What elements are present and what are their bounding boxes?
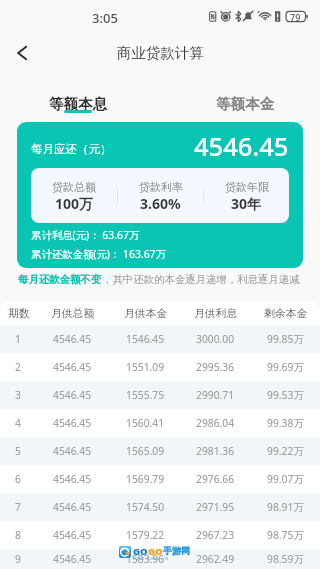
staticText: 5 [15,444,21,458]
staticText: GO [133,545,148,558]
staticText: 99.07万 [267,472,304,486]
staticText: 99.85万 [267,332,304,346]
staticText: 贷款年限 [225,180,269,194]
staticText: 1565.09 [126,444,165,458]
staticText: 3:05 [92,9,118,27]
staticText: 期数 [8,307,30,321]
staticText: 4 [15,416,21,430]
staticText: 月供本金 [124,307,168,321]
staticText: 99.38万 [267,416,304,430]
staticText: 1546.45 [126,332,165,346]
staticText: W W W . G O G O . C N [133,556,169,561]
staticText: 99.22万 [267,444,304,458]
staticText: 100万 [55,194,94,213]
staticText: 99.53万 [267,388,304,402]
staticText: 每月应还（元） [31,142,112,156]
staticText: 2986.04 [196,416,235,430]
staticText: ，其中还款的本金逐月递增，利息逐月递减 [102,273,300,286]
staticText: 3000.00 [196,332,235,346]
staticText: GO [148,545,163,558]
staticText: 2990.71 [196,388,235,402]
staticText: 4546.45 [53,472,92,486]
staticText: 3 [15,388,21,402]
staticText: 1 [15,332,21,346]
staticText: 98.91万 [267,500,304,514]
button[interactable]: Back [6,37,38,69]
staticText: 1569.79 [126,472,165,486]
staticText: 剩余本金 [264,307,308,321]
staticText: 4546.45 [194,129,289,164]
staticText: 每月还款金额不变 [18,273,102,286]
staticText: 2995.36 [196,360,235,374]
staticText: 累计利息(元)： 63.67万 [31,228,140,242]
staticText: 商业贷款计算 [117,44,204,62]
staticText: 1560.41 [126,416,165,430]
button[interactable]: 等额本金 [195,75,295,122]
staticText: 1583.96 [126,552,165,566]
staticText: 2967.23 [196,528,235,542]
button[interactable]: 等额本息 [28,75,128,122]
staticText: 98.75万 [267,528,304,542]
staticText: 98.59万 [267,552,304,566]
staticText: 6 [15,472,21,486]
staticText: 4546.45 [53,528,92,542]
staticText: 2971.95 [196,500,235,514]
staticText: 累计还款金额(元)： 163.67万 [31,247,166,261]
staticText: 2 [15,360,21,374]
staticText: 30年 [231,194,262,213]
staticText: 月供总额 [51,307,95,321]
staticText: 4546.45 [53,360,92,374]
staticText: 月供利息 [194,307,238,321]
staticText: 4546.45 [53,552,92,566]
staticText: 79 [290,11,301,23]
staticText: 4546.45 [53,416,92,430]
staticText: 等额本息 [49,95,107,113]
staticText: 4546.45 [53,388,92,402]
staticText: 9 [15,552,21,566]
staticText: 1551.09 [126,360,165,374]
staticText: 贷款利率 [139,180,183,194]
staticText: 2981.36 [196,444,235,458]
staticText: 2976.66 [196,472,235,486]
staticText: 7 [15,500,21,514]
staticText: 4546.45 [53,444,92,458]
staticText: 2962.49 [196,552,235,566]
staticText: 4546.45 [53,500,92,514]
staticText: 3.60% [140,194,181,213]
staticText: 8 [15,528,21,542]
staticText: 1555.75 [126,388,165,402]
staticText: 等额本金 [216,95,274,113]
staticText: 手游网 [163,545,190,556]
staticText: 99.69万 [267,360,304,374]
staticText: 4546.45 [53,332,92,346]
staticText: 1574.50 [126,500,165,514]
staticText: 1579.22 [126,528,165,542]
staticText: 贷款总额 [52,180,96,194]
